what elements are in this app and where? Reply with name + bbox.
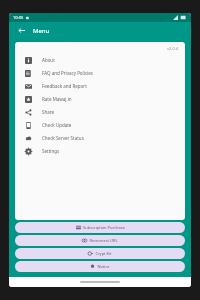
button[interactable]: Check Update [15,118,185,131]
staticText: Rate Mawaj.in [42,96,72,102]
staticText: 10:05 [13,15,24,20]
staticText: Crypt Kit [95,251,112,256]
button[interactable]: Check Server Status [15,131,185,144]
staticText: Menu [33,27,50,35]
button[interactable]: Notice [15,261,185,272]
staticText: Check Server Status [42,135,84,141]
staticText: v2.0.4 [167,46,179,51]
staticText: Share [42,109,55,115]
staticText: FAQ and Privacy Policies [42,70,93,76]
staticText: Subscription Purchase [83,225,125,230]
button[interactable]: Settings [15,144,185,157]
button[interactable]: Feedback and Report [15,79,185,92]
button[interactable]: Share [15,105,185,118]
staticText: Feedback and Report [42,83,87,89]
button[interactable]: Crypt Kit [15,248,185,259]
button[interactable]: Subscription Purchase [15,222,185,233]
button[interactable]: Back [15,24,28,37]
button[interactable]: About [15,53,185,66]
staticText: About [42,57,55,63]
staticText: Settings [42,148,60,154]
staticText: Notice [97,264,110,269]
button[interactable]: Reconnect URL [15,235,185,246]
staticText: Check Update [42,122,72,128]
staticText: Reconnect URL [89,238,118,243]
button[interactable]: FAQ and Privacy Policies [15,66,185,79]
button[interactable]: Rate Mawaj.in [15,92,185,105]
